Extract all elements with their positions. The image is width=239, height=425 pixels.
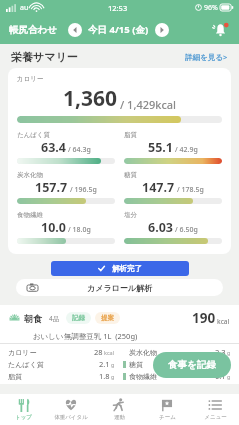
staticText: 147.7 [142, 179, 175, 196]
staticText: 4品 [49, 314, 60, 323]
staticText: チーム [159, 414, 176, 421]
staticText: たんぱく質 [17, 131, 51, 139]
staticText: 12:53 [108, 3, 128, 13]
staticText: g [227, 361, 231, 368]
button[interactable]: カメラロール解析 [16, 279, 223, 296]
staticText: kcal [104, 349, 115, 356]
button[interactable]: 記録 [66, 312, 91, 324]
staticText: 今日 4/15 (金) [88, 23, 149, 36]
button[interactable]: 詳細を見る [185, 52, 228, 62]
button[interactable]: トップ [0, 394, 47, 425]
staticText: 運動 [114, 414, 125, 421]
staticText: 炭水化物 [129, 348, 157, 357]
staticText: 脂質 [8, 372, 22, 381]
staticText: 55.1 [148, 139, 173, 156]
staticText: おいしい無調整豆乳 1L (250g) [33, 331, 239, 341]
staticText: 28 [94, 347, 103, 357]
staticText: / 1,429kcal [120, 97, 177, 112]
staticText: kcal [217, 317, 230, 326]
staticText: 糖質 [129, 360, 143, 369]
staticText: / 178.5g [177, 185, 204, 195]
staticText: / 18.0g [68, 225, 91, 235]
staticText: 記録 [72, 314, 85, 322]
staticText: au [20, 3, 29, 13]
staticText: 157.7 [35, 179, 68, 196]
staticText: g [111, 361, 115, 368]
staticText: 6.03 [148, 219, 173, 236]
staticText: 朝食 [24, 313, 42, 324]
staticText: 詳細を見る [185, 53, 223, 62]
button[interactable]: 食事を記録 [153, 352, 231, 378]
staticText: 塩分 [124, 211, 137, 219]
button[interactable]: 提案 [95, 312, 120, 324]
staticText: メニュー [204, 414, 227, 421]
staticText: カロリー [8, 348, 37, 357]
staticText: 2.2 [215, 359, 226, 369]
button[interactable]: 前日 [68, 23, 82, 37]
staticText: 1,360 [63, 84, 118, 113]
button[interactable]: 翌日 [155, 23, 169, 37]
button[interactable]: メニュー [191, 394, 239, 425]
staticText: g [111, 373, 115, 380]
staticText: 食物繊維 [17, 211, 43, 219]
staticText: g [227, 349, 231, 356]
staticText: 0.1 [215, 371, 226, 381]
staticText: トップ [15, 414, 32, 421]
button[interactable]: チーム [143, 394, 191, 425]
staticText: カロリー [17, 75, 44, 83]
staticText: 糖質 [124, 171, 137, 179]
staticText: 帳尻合わせ [9, 24, 57, 36]
staticText: 体重バイタル [54, 414, 88, 421]
button[interactable]: 体重バイタル [47, 394, 95, 425]
staticText: 10.0 [41, 219, 66, 236]
staticText: 1.8 [99, 371, 110, 381]
staticText: たんぱく質 [8, 360, 44, 369]
staticText: 2.1 [99, 359, 110, 369]
staticText: / 196.5g [70, 185, 97, 195]
staticText: 食物繊維 [129, 372, 157, 381]
button[interactable]: 解析完了 [51, 261, 189, 276]
staticText: 190 [192, 309, 216, 327]
staticText: 栄養サマリー [11, 50, 78, 64]
staticText: 96% [204, 3, 218, 13]
button[interactable]: 運動 [95, 394, 143, 425]
staticText: 提案 [101, 314, 114, 322]
staticText: / 64.3g [68, 145, 91, 155]
staticText: / 42.9g [175, 145, 198, 155]
staticText: > [223, 52, 228, 62]
staticText: 63.4 [41, 139, 66, 156]
staticText: カメラロール解析 [87, 283, 152, 293]
staticText: 炭水化物 [17, 171, 43, 179]
staticText: 解析完了 [112, 264, 142, 273]
staticText: g [227, 373, 231, 380]
button[interactable]: 通知 [210, 20, 230, 40]
staticText: 2.3 [215, 347, 226, 357]
staticText: 食事を記録 [168, 359, 216, 371]
staticText: / 6.50g [175, 225, 198, 235]
staticText: 脂質 [124, 131, 137, 139]
